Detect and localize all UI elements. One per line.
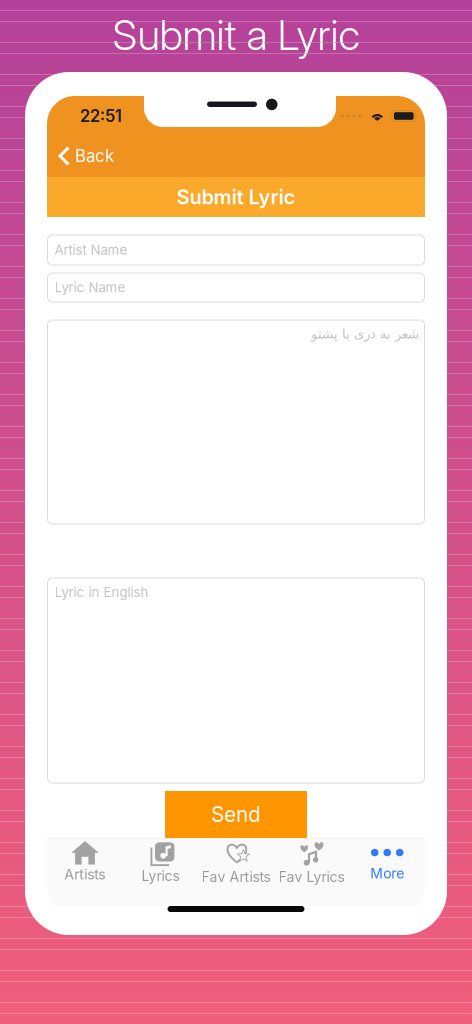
staticText: Artists xyxy=(64,866,105,883)
button[interactable]: Send xyxy=(165,791,307,838)
staticText: More xyxy=(370,865,404,882)
staticText: Artist Name xyxy=(54,242,127,258)
staticText: Submit Lyric xyxy=(176,185,295,209)
staticText: Fav Lyrics xyxy=(279,868,345,885)
button[interactable]: Fav Artists xyxy=(198,838,274,884)
button[interactable]: Fav Lyrics xyxy=(274,838,349,884)
staticText: Lyrics xyxy=(141,867,179,884)
button[interactable]: More xyxy=(349,838,425,884)
staticText: Submit a Lyric xyxy=(112,10,359,60)
staticText: Send xyxy=(211,802,261,827)
button[interactable]: Back xyxy=(47,138,157,174)
staticText: Back xyxy=(75,146,114,166)
staticText: 22:51 xyxy=(80,106,122,126)
staticText: Lyric Name xyxy=(54,279,125,295)
button[interactable]: Artists xyxy=(47,838,123,884)
staticText: Lyric in English xyxy=(54,584,148,600)
staticText: شعر به دری یا پشتو xyxy=(310,326,418,341)
staticText: Fav Artists xyxy=(201,868,270,885)
button[interactable]: Lyrics xyxy=(123,838,198,884)
